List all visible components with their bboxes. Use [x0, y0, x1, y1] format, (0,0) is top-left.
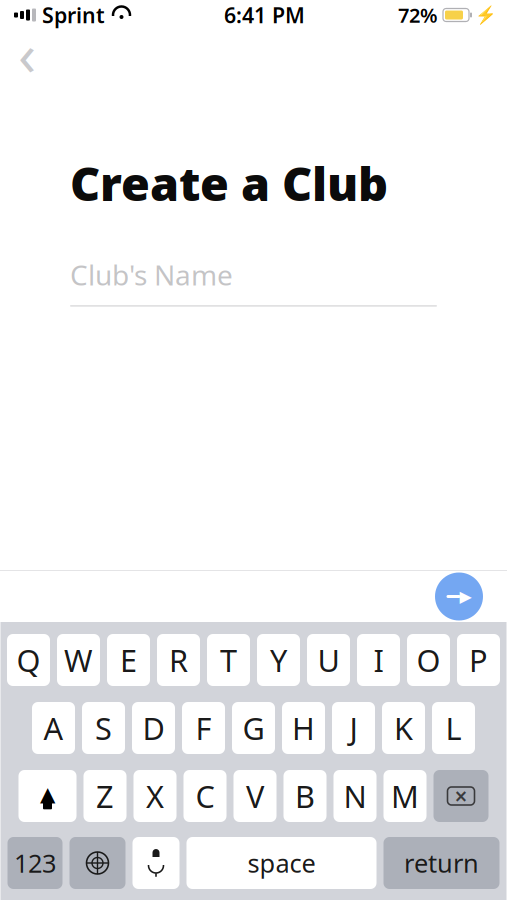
button[interactable]: T	[207, 634, 250, 686]
button[interactable]: Shift	[18, 770, 76, 822]
staticText: F	[195, 708, 211, 748]
button[interactable]: Next keyboard	[69, 837, 125, 889]
staticText: ▲	[40, 783, 55, 805]
staticText: I	[373, 640, 383, 680]
staticText: K	[394, 708, 413, 748]
staticText: A	[43, 708, 63, 748]
button[interactable]: E	[107, 634, 150, 686]
staticText: L	[445, 708, 461, 748]
button[interactable]: return	[383, 837, 499, 889]
button[interactable]: H	[282, 702, 325, 754]
staticText: N	[343, 776, 366, 816]
button[interactable]: C	[183, 770, 226, 822]
staticText: Sprint	[42, 1, 105, 29]
staticText: V	[246, 776, 264, 816]
button[interactable]: I	[357, 634, 400, 686]
button[interactable]: space	[186, 837, 376, 889]
staticText: H	[292, 708, 315, 748]
staticText: return	[404, 846, 479, 880]
button[interactable]: G	[232, 702, 275, 754]
button[interactable]: B	[283, 770, 326, 822]
button[interactable]: V	[233, 770, 276, 822]
staticText: G	[242, 708, 264, 748]
staticText: Z	[96, 776, 114, 816]
staticText: O	[416, 640, 440, 680]
staticText: E	[120, 640, 137, 680]
button[interactable]: Q	[7, 634, 50, 686]
staticText: ‹	[18, 14, 36, 92]
button[interactable]: F	[182, 702, 225, 754]
button[interactable]: Dictation	[132, 837, 179, 889]
staticText: D	[142, 708, 164, 748]
button[interactable]: U	[307, 634, 350, 686]
staticText: 72%	[398, 2, 438, 28]
staticText: S	[95, 708, 112, 748]
staticText: Club's Name	[70, 256, 233, 293]
button[interactable]: Y	[257, 634, 300, 686]
staticText: 123	[14, 846, 56, 880]
staticText: J	[349, 708, 357, 748]
button[interactable]: Delete	[433, 770, 488, 822]
button[interactable]: N	[333, 770, 376, 822]
staticText: B	[295, 776, 315, 816]
staticText: ⚡	[475, 5, 497, 25]
staticText: ▶	[459, 587, 471, 606]
staticText: space	[247, 846, 315, 880]
button[interactable]: Back	[0, 32, 54, 80]
button[interactable]: J	[332, 702, 375, 754]
button[interactable]: X	[133, 770, 176, 822]
button[interactable]: R	[157, 634, 200, 686]
staticText: ×	[454, 781, 467, 811]
button[interactable]: L	[432, 702, 475, 754]
button[interactable]: M	[383, 770, 426, 822]
button[interactable]: Continue	[435, 572, 483, 620]
staticText: C	[195, 776, 214, 816]
button[interactable]: P	[457, 634, 500, 686]
staticText: M	[391, 776, 419, 816]
staticText: Q	[16, 640, 40, 680]
staticText: Create a Club	[70, 152, 388, 214]
staticText: X	[146, 776, 164, 816]
staticText: P	[469, 640, 488, 680]
staticText: Y	[270, 640, 287, 680]
button[interactable]: Z	[83, 770, 126, 822]
staticText: 6:41 PM	[224, 1, 305, 29]
staticText: R	[169, 640, 188, 680]
staticText: U	[317, 640, 339, 680]
button[interactable]: W	[57, 634, 100, 686]
button[interactable]: D	[132, 702, 175, 754]
staticText: T	[220, 640, 237, 680]
button[interactable]: S	[82, 702, 125, 754]
button[interactable]: A	[32, 702, 75, 754]
staticText: W	[64, 640, 93, 680]
button[interactable]: K	[382, 702, 425, 754]
button[interactable]: O	[407, 634, 450, 686]
button[interactable]: 123	[7, 837, 62, 889]
